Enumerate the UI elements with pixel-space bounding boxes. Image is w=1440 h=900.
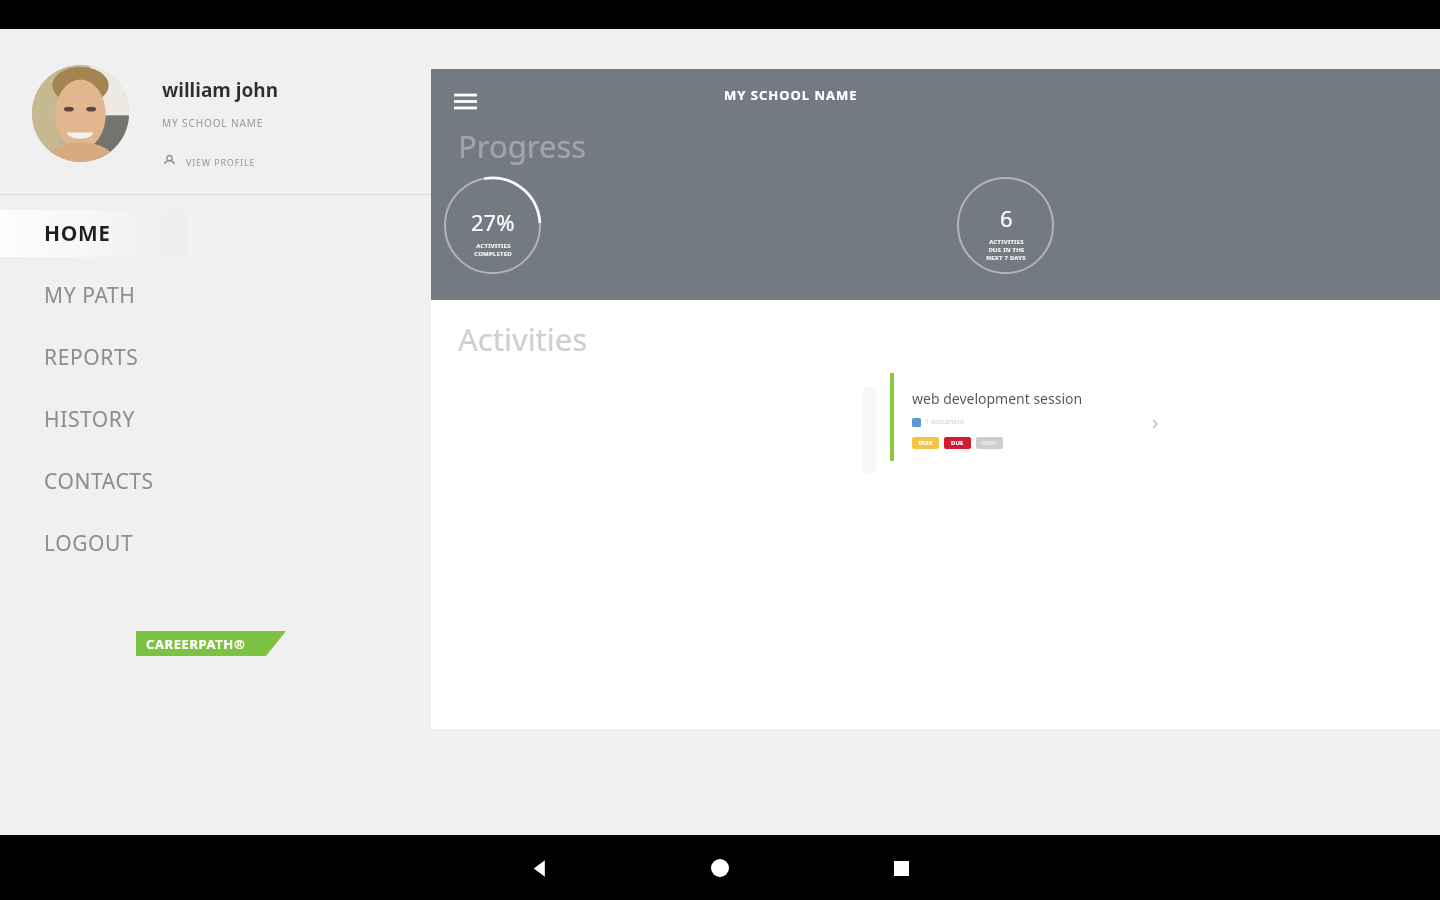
button[interactable]: TASK [912, 437, 939, 449]
staticText: Progress [458, 125, 587, 167]
staticText: ACTIVITIES [989, 238, 1024, 246]
button[interactable]: HOME [0, 202, 431, 264]
button[interactable]: 27% [442, 175, 543, 276]
button[interactable]: 6 [955, 175, 1056, 276]
staticText: 6 [1000, 203, 1013, 233]
button[interactable]: william john [0, 65, 431, 169]
button[interactable]: Recent apps [877, 844, 925, 892]
button[interactable]: LOGOUT [0, 512, 431, 574]
button[interactable] [863, 387, 1153, 473]
button[interactable]: CareerPath logo [136, 631, 286, 656]
button[interactable]: CONTACTS [0, 450, 431, 512]
staticText: HISTORY [44, 405, 136, 434]
staticText: LOGOUT [44, 529, 134, 558]
staticText: TASK [918, 439, 933, 447]
staticText: 27% [471, 207, 515, 237]
staticText: CAREERPATH® [146, 635, 246, 653]
button[interactable]: DUE [944, 437, 971, 449]
staticText: VIEW PROFILE [186, 156, 256, 168]
staticText: MY SCHOOL NAME [724, 86, 858, 104]
button[interactable]: VIEW PROFILE [162, 154, 256, 169]
staticText: DUE IN THE [988, 246, 1025, 254]
button[interactable]: REPORTS [0, 326, 431, 388]
staticText: REPORTS [44, 343, 139, 372]
staticText: MY SCHOOL NAME [162, 116, 264, 130]
button[interactable]: HISTORY [0, 388, 431, 450]
staticText: ACTIVITIES [476, 242, 511, 250]
staticText: COMPLETED [474, 250, 512, 258]
staticText: NEW [982, 439, 997, 447]
staticText: DUE [951, 439, 964, 447]
staticText: Activities [458, 318, 588, 360]
staticText: william john [162, 77, 279, 103]
button[interactable]: NEW [976, 437, 1003, 449]
button[interactable]: Open navigation menu [443, 79, 487, 123]
staticText: web development session [912, 389, 1083, 408]
staticText: CONTACTS [44, 467, 154, 496]
button[interactable]: MY PATH [0, 264, 431, 326]
staticText: HOME [44, 219, 111, 248]
staticText: NEXT 7 DAYS [986, 254, 1026, 262]
staticText: MY PATH [44, 281, 136, 310]
button[interactable]: Home [696, 844, 744, 892]
button[interactable]: Back [515, 844, 563, 892]
button[interactable]: web development session [876, 363, 1169, 484]
staticText: 1 document [925, 417, 965, 427]
